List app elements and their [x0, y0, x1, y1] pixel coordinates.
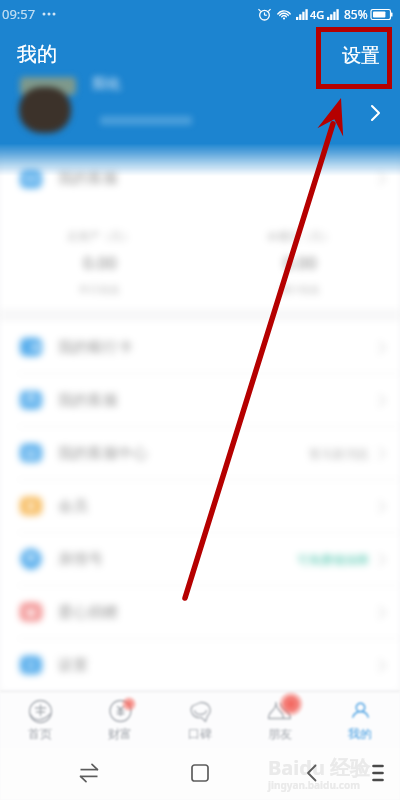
staticText: 设置 [342, 44, 380, 68]
staticText: 09:57 [2, 5, 36, 23]
button[interactable]: 财富 [80, 692, 160, 748]
button[interactable]: 朋友 [240, 692, 320, 748]
button[interactable]: 口碑 [160, 692, 240, 748]
button[interactable]: 阳化 [0, 74, 400, 142]
staticText: 亲情号 [58, 550, 103, 569]
button[interactable]: Profile [364, 102, 386, 124]
button[interactable]: 我的银行卡 [0, 321, 400, 373]
button[interactable]: Home [185, 758, 215, 788]
staticText: jingyan.baidu.com [268, 778, 360, 792]
button[interactable]: Menu [364, 759, 392, 787]
button[interactable]: 设置 [332, 38, 390, 74]
staticText: 设置 [58, 656, 88, 675]
button[interactable]: 余额宝（元） [200, 201, 400, 309]
staticText: 0.00 [283, 251, 317, 274]
staticText: 可免费领保障 [297, 552, 369, 567]
staticText: 口碑 [188, 726, 212, 741]
button[interactable]: 首页 [0, 692, 80, 748]
staticText: 会员 [58, 497, 88, 516]
button[interactable]: 会员 [0, 480, 400, 532]
button[interactable]: 总资产（元） [0, 201, 200, 309]
staticText: 我的银行卡 [58, 338, 133, 357]
staticText: 财富 [108, 726, 132, 741]
button[interactable]: 我的客服 [0, 156, 400, 201]
staticText: 4G [310, 7, 325, 22]
staticText: 累计收益 [280, 283, 320, 296]
staticText: 85% [344, 6, 368, 22]
staticText: Baidu 经验 [268, 754, 371, 781]
staticText: 我的 [17, 42, 57, 67]
button[interactable]: 亲情号 [0, 533, 400, 585]
staticText: 我的客服 [58, 169, 118, 188]
button[interactable]: 爱心捐赠 [0, 586, 400, 638]
staticText: 总资产（元） [67, 229, 133, 243]
staticText: 我的客服 [58, 391, 118, 410]
button[interactable]: 我的客服 [0, 374, 400, 426]
staticText: 爱心捐赠 [58, 603, 118, 622]
staticText: 我的客服中心 [58, 444, 148, 463]
button[interactable]: 我的客服中心 [0, 427, 400, 479]
staticText: 暂无新消息 [309, 446, 369, 461]
button[interactable]: Back [295, 758, 325, 788]
staticText: 余额宝（元） [267, 229, 333, 243]
button[interactable]: Recent apps [74, 758, 104, 788]
staticText: 我的 [348, 726, 372, 741]
staticText: 昨日收益 [80, 283, 120, 296]
button[interactable]: 我的 [320, 692, 400, 748]
staticText: 0.00 [83, 251, 117, 274]
staticText: 阳化 [93, 75, 121, 93]
staticText: 朋友 [268, 726, 292, 741]
button[interactable]: 设置 [0, 639, 400, 691]
staticText: 首页 [28, 726, 52, 741]
